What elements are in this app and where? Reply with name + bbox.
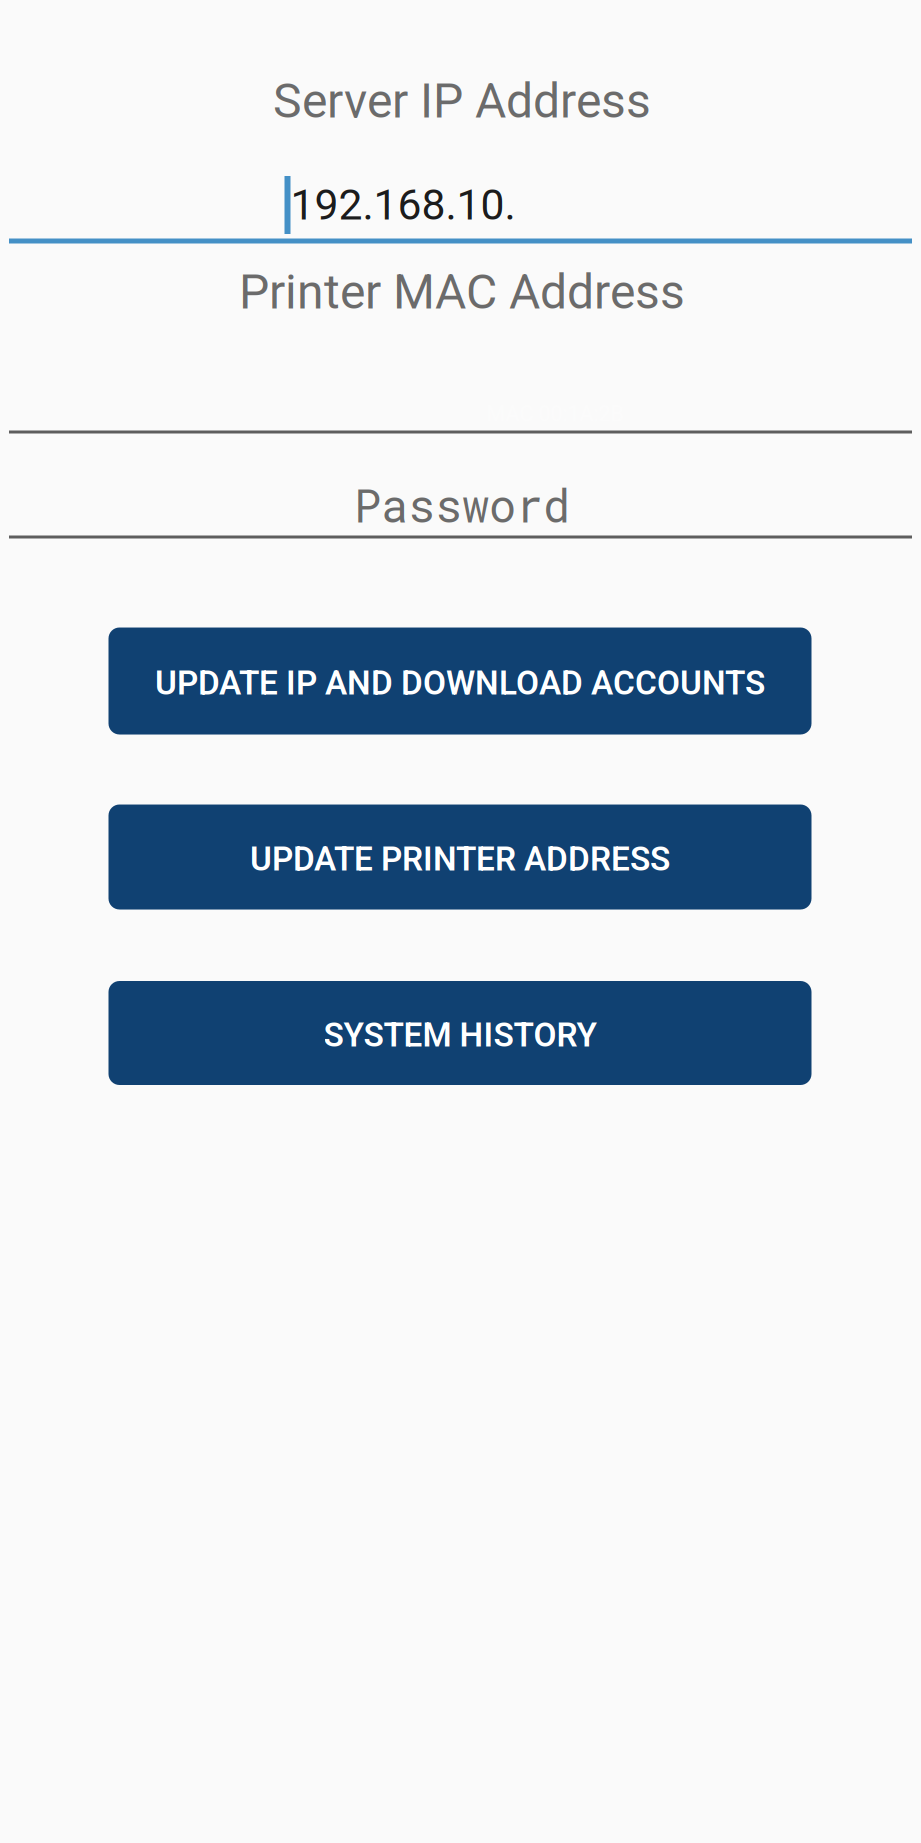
- staticText: Printer MAC Address: [239, 264, 685, 320]
- staticText: 192.168.10.: [290, 180, 515, 230]
- staticText: UPDATE PRINTER ADDRESS: [250, 839, 670, 879]
- staticText: UPDATE IP AND DOWNLOAD ACCOUNTS: [155, 663, 765, 703]
- button[interactable]: Printer MAC Address: [9, 250, 912, 434]
- staticText: Server IP Address: [273, 73, 651, 129]
- staticText: Password: [354, 475, 570, 535]
- button[interactable]: UPDATE PRINTER ADDRESS: [108, 804, 811, 909]
- button[interactable]: Server IP Address: [9, 60, 912, 243]
- button[interactable]: Password: [9, 440, 912, 539]
- button[interactable]: SYSTEM HISTORY: [108, 981, 811, 1085]
- button[interactable]: UPDATE IP AND DOWNLOAD ACCOUNTS: [108, 627, 811, 734]
- staticText: SYSTEM HISTORY: [323, 1015, 596, 1055]
